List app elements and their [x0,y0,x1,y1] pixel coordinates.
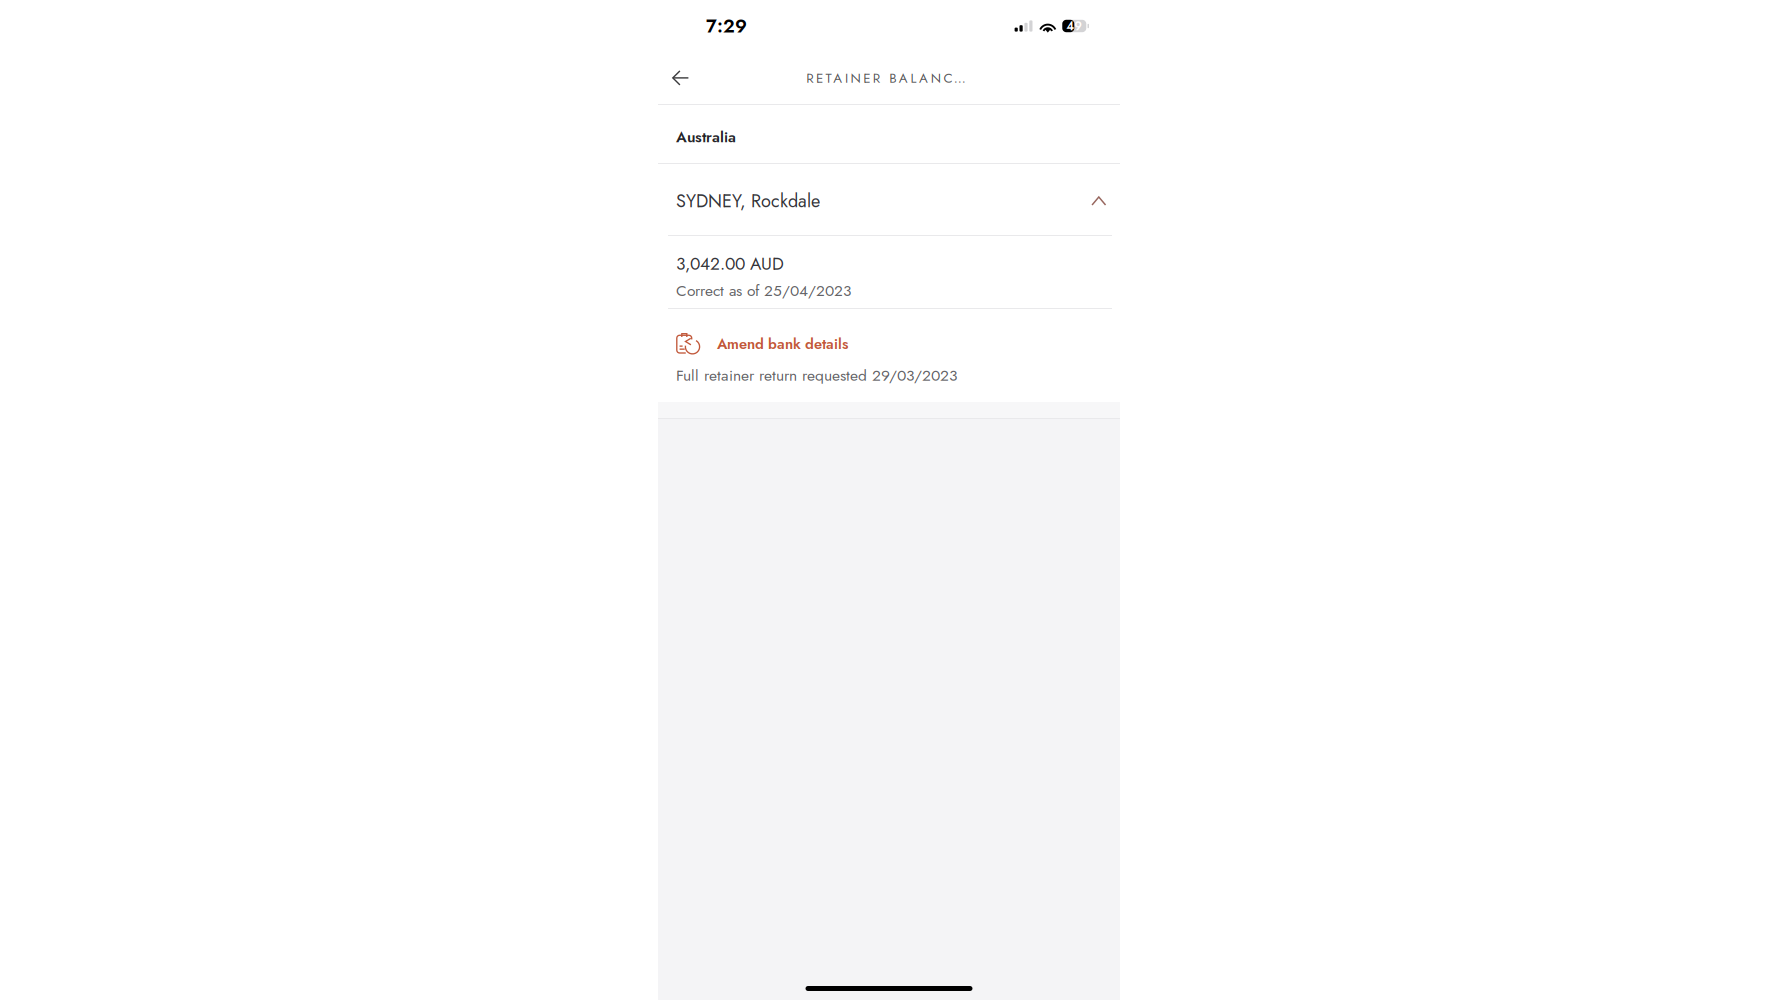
staticText: Correct as of 25/04/2023 [676,279,851,302]
staticText: 3,042.00 AUD [676,251,784,276]
staticText: Australia [676,126,736,148]
staticText: SYDNEY, Rockdale [676,188,820,214]
staticText: Full retainer return requested 29/03/202… [676,364,958,386]
button[interactable]: Back [658,52,714,104]
staticText: Amend bank details [717,333,848,355]
staticText: RETAINER BALANCES [806,68,972,88]
staticText: 7:29 [706,12,747,39]
button[interactable]: SYDNEY, Rockdale [658,164,1120,235]
staticText: 49 [1066,17,1082,35]
button[interactable]: Amend bank details [658,309,1120,357]
